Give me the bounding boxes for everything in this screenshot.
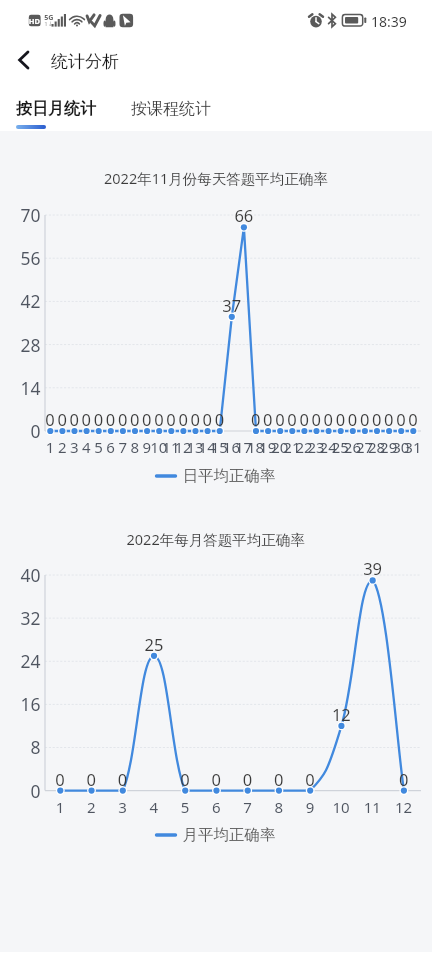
- staticText: 按日月统计: [16, 99, 96, 119]
- staticText: 按课程统计: [131, 99, 211, 119]
- staticText: 统计分析: [51, 51, 119, 72]
- button[interactable]: 按日月统计: [16, 99, 96, 119]
- button[interactable]: 按课程统计: [131, 99, 211, 119]
- staticText: 18:39: [371, 12, 407, 31]
- button[interactable]: Back: [6, 42, 42, 78]
